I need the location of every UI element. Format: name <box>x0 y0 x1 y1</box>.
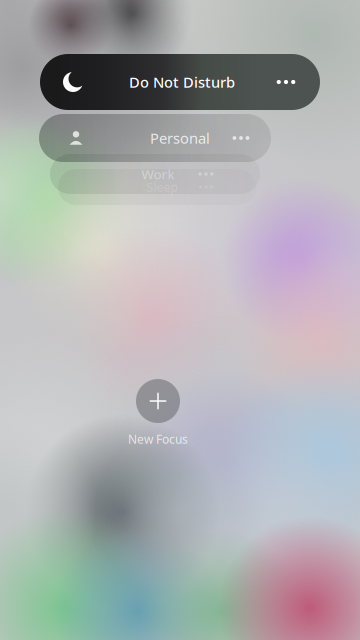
staticText: Sleep <box>146 179 177 195</box>
button[interactable]: Do Not Disturb <box>40 54 320 110</box>
staticText: New Focus <box>128 431 188 447</box>
staticText: Personal <box>150 128 210 148</box>
staticText: Work <box>141 165 174 183</box>
button[interactable]: Sleep <box>58 169 256 205</box>
button[interactable]: Personal <box>39 114 271 162</box>
button[interactable]: Work <box>50 154 260 194</box>
button[interactable]: New Focus <box>128 379 188 447</box>
staticText: Do Not Disturb <box>129 72 235 92</box>
